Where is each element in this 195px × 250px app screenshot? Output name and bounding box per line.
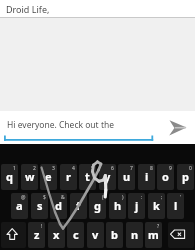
staticText: q xyxy=(6,169,13,184)
staticText: m xyxy=(148,227,159,242)
button[interactable]: n xyxy=(126,222,143,248)
button[interactable]: p xyxy=(177,164,194,190)
staticText: e xyxy=(45,169,52,184)
staticText: k xyxy=(153,198,160,213)
staticText: i xyxy=(145,169,149,184)
button[interactable] xyxy=(1,222,26,248)
staticText: b xyxy=(111,227,118,242)
staticText: a xyxy=(16,198,23,213)
button[interactable]: z xyxy=(28,222,45,248)
button[interactable]: s xyxy=(31,193,48,219)
button[interactable]: y xyxy=(99,164,116,190)
button[interactable] xyxy=(162,114,192,142)
staticText: ( xyxy=(102,194,104,201)
staticText: 7 xyxy=(130,165,133,172)
staticText: Droid Life, xyxy=(6,3,50,15)
button[interactable]: j xyxy=(128,193,145,219)
staticText: 0 xyxy=(189,165,192,172)
staticText: u xyxy=(123,169,131,184)
staticText: 6 xyxy=(111,165,114,172)
button[interactable]: q xyxy=(1,164,18,190)
staticText: n xyxy=(131,227,139,242)
staticText: c xyxy=(73,227,79,242)
button[interactable] xyxy=(168,222,194,248)
staticText: 4 xyxy=(72,165,75,172)
staticText: g xyxy=(94,198,101,213)
staticText: w xyxy=(25,169,35,184)
button[interactable]: c xyxy=(67,222,84,248)
staticText: j xyxy=(135,198,139,213)
button[interactable]: Hi everyone. Check out the xyxy=(0,111,195,144)
button[interactable]: h xyxy=(109,193,126,219)
button[interactable]: o xyxy=(157,164,174,190)
staticText: p xyxy=(182,169,189,184)
button[interactable]: g xyxy=(89,193,106,219)
button[interactable]: d xyxy=(50,193,67,219)
button[interactable]: w xyxy=(21,164,38,190)
button[interactable]: f xyxy=(70,193,87,219)
staticText: t xyxy=(85,169,90,184)
staticText: d xyxy=(55,198,62,213)
staticText: $ xyxy=(43,194,46,201)
staticText: ' xyxy=(180,194,182,201)
button[interactable]: l xyxy=(167,193,184,219)
staticText: f xyxy=(76,198,81,213)
staticText: x xyxy=(53,227,60,242)
staticText: Hi everyone. Check out the xyxy=(7,119,114,131)
button[interactable]: t xyxy=(79,164,96,190)
staticText: @ xyxy=(21,194,26,201)
staticText: / xyxy=(83,194,85,201)
staticText: 8 xyxy=(150,165,153,172)
staticText: ; xyxy=(161,194,163,201)
button[interactable]: x xyxy=(48,222,65,248)
button[interactable]: u xyxy=(118,164,135,190)
button[interactable]: b xyxy=(106,222,123,248)
button[interactable]: v xyxy=(87,222,104,248)
staticText: ) xyxy=(122,194,124,201)
button[interactable]: i xyxy=(138,164,155,190)
staticText: ? xyxy=(157,223,160,230)
staticText: l xyxy=(174,198,178,213)
staticText: 2 xyxy=(33,165,36,172)
staticText: z xyxy=(34,227,40,242)
staticText: 9 xyxy=(169,165,172,172)
staticText: r xyxy=(66,169,71,184)
button[interactable]: r xyxy=(60,164,77,190)
staticText: h xyxy=(114,198,122,213)
staticText: ! xyxy=(41,223,43,230)
staticText: 1 xyxy=(13,165,16,172)
button[interactable]: a xyxy=(11,193,28,219)
button[interactable]: e xyxy=(40,164,57,190)
button[interactable]: m xyxy=(145,222,162,248)
staticText: v xyxy=(92,227,99,242)
staticText: & xyxy=(61,194,65,201)
staticText: 3 xyxy=(52,165,55,172)
staticText: o xyxy=(162,169,169,184)
button[interactable]: k xyxy=(148,193,165,219)
staticText: : xyxy=(141,194,143,201)
staticText: s xyxy=(37,198,43,213)
staticText: y xyxy=(104,169,111,184)
staticText: 5 xyxy=(91,165,94,172)
